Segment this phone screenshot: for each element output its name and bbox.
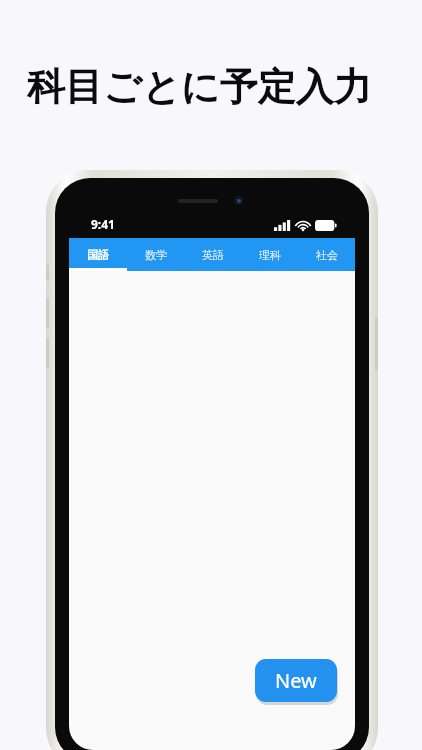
button[interactable]: 国語 (69, 238, 127, 271)
button[interactable]: 社会 (298, 238, 355, 271)
button[interactable]: 数学 (127, 238, 184, 271)
button[interactable]: 理科 (241, 238, 298, 271)
staticText: 9:41 (91, 216, 115, 232)
staticText: 数学 (145, 248, 167, 262)
button[interactable]: New (255, 659, 337, 702)
staticText: 英語 (202, 248, 224, 262)
staticText: 理科 (259, 248, 281, 262)
staticText: 科目ごとに予定入力 (27, 63, 372, 111)
staticText: 社会 (316, 248, 338, 262)
staticText: 国語 (87, 248, 109, 262)
staticText: New (275, 667, 317, 694)
button[interactable]: 英語 (184, 238, 241, 271)
